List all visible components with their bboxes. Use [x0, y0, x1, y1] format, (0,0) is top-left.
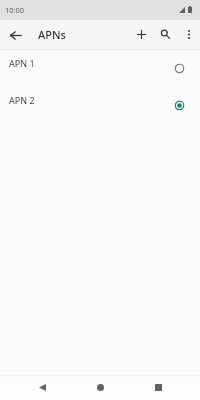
button[interactable]: Add — [130, 20, 153, 49]
staticText: APN 1 — [9, 57, 35, 69]
button[interactable]: More options — [177, 20, 200, 49]
button[interactable]: Recents — [143, 374, 173, 400]
button[interactable]: Back — [27, 374, 57, 400]
staticText: 10:00 — [5, 5, 24, 15]
button[interactable]: Back — [0, 20, 31, 49]
button[interactable]: APN 2 — [0, 86, 200, 123]
staticText: APNs — [38, 27, 66, 42]
button[interactable]: APN 1 — [0, 49, 200, 86]
staticText: APN 2 — [9, 94, 35, 106]
button[interactable]: Search — [154, 20, 177, 49]
button[interactable]: Home — [85, 374, 115, 400]
